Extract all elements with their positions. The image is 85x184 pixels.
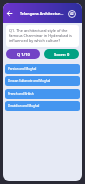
button[interactable]: Deccan Sultanate and Mughal bbox=[5, 76, 80, 86]
button[interactable]: Timer bbox=[67, 9, 76, 18]
staticText: Telangana Architecture Quiz bbox=[20, 11, 65, 16]
button[interactable]: Score: 0 bbox=[44, 49, 79, 59]
staticText: French and British bbox=[8, 92, 34, 96]
button[interactable]: Back bbox=[4, 8, 15, 19]
button[interactable]: French and British bbox=[5, 89, 80, 99]
staticText: Q 1/10 bbox=[17, 52, 30, 57]
button[interactable]: Persian and Mughal bbox=[5, 64, 80, 74]
staticText: Deccan Sultanate and Mughal bbox=[8, 79, 51, 83]
button[interactable]: Dravidian and Mughal bbox=[5, 101, 80, 111]
staticText: 42 bbox=[70, 12, 74, 16]
staticText: Score: 0 bbox=[54, 52, 70, 57]
staticText: Persian and Mughal bbox=[8, 67, 37, 71]
staticText: Dravidian and Mughal bbox=[8, 104, 40, 108]
staticText: Q1. The architectural style of the famou… bbox=[9, 28, 76, 43]
button[interactable]: Q 1/10 bbox=[6, 49, 40, 59]
